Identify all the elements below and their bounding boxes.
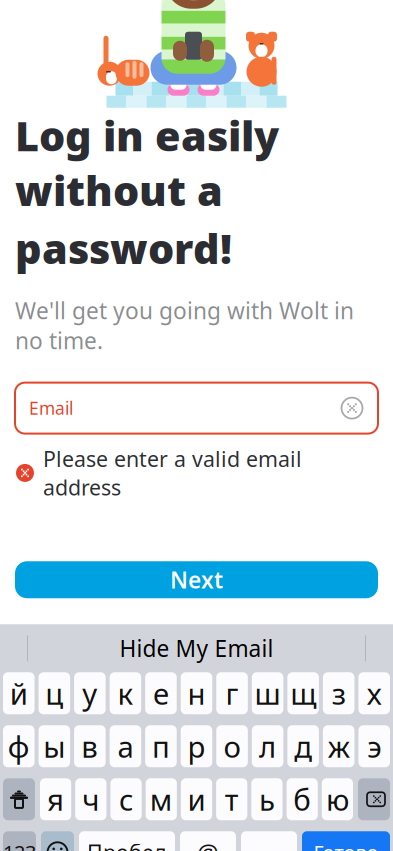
button[interactable]: Clear text [334, 390, 370, 426]
staticText: щ [290, 674, 316, 713]
staticText: @ [197, 836, 219, 851]
staticText: ц [45, 674, 63, 713]
button[interactable]: н [181, 672, 212, 714]
button[interactable]: ц [38, 672, 70, 714]
button[interactable]: с [110, 778, 142, 820]
button[interactable]: 123 [3, 831, 36, 851]
staticText: Пробел [87, 838, 167, 851]
staticText: й [10, 674, 28, 713]
button[interactable]: й [3, 672, 34, 714]
staticText: ш [255, 674, 281, 713]
button[interactable]: х [358, 672, 390, 714]
button[interactable]: щ [287, 672, 319, 714]
button[interactable]: ш [252, 672, 283, 714]
staticText: и [187, 780, 205, 819]
button[interactable]: Hide My Email [60, 625, 333, 671]
button[interactable]: ф [3, 725, 34, 767]
staticText: Готово [313, 839, 378, 851]
button[interactable]: п [145, 725, 177, 767]
button[interactable]: я [40, 778, 71, 820]
button[interactable]: д [287, 725, 319, 767]
staticText: з [332, 674, 346, 713]
button[interactable]: Delete [358, 778, 390, 820]
button[interactable]: @ [180, 831, 236, 851]
staticText: т [225, 780, 239, 819]
staticText: ь [259, 780, 275, 819]
staticText: н [187, 674, 205, 713]
staticText: м [150, 780, 173, 819]
staticText: с [119, 780, 133, 819]
button[interactable]: о [216, 725, 248, 767]
button[interactable]: ь [251, 778, 282, 820]
staticText: д [294, 727, 312, 766]
staticText: 123 [3, 839, 36, 851]
staticText: ы [43, 727, 65, 766]
button[interactable]: г [216, 672, 248, 714]
staticText: э [367, 727, 381, 766]
staticText: ж [328, 727, 350, 766]
staticText: Log in easily without a [15, 108, 279, 217]
button[interactable]: и [181, 778, 212, 820]
button[interactable]: э [358, 725, 390, 767]
button[interactable]: а [110, 725, 141, 767]
staticText: у [82, 674, 97, 713]
button[interactable]: м [146, 778, 177, 820]
staticText: х [367, 674, 382, 713]
staticText: We'll get you going with Wolt in no time… [15, 295, 354, 356]
button[interactable]: р [181, 725, 212, 767]
button[interactable]: ж [323, 725, 354, 767]
staticText: Hide My Email [119, 633, 273, 663]
staticText: б [293, 780, 311, 819]
button[interactable]: Пробел [79, 831, 175, 851]
button[interactable]: з [323, 672, 354, 714]
button[interactable]: Next [15, 561, 378, 598]
staticText: р [187, 727, 205, 766]
staticText: а [117, 727, 133, 766]
staticText: я [47, 780, 64, 819]
staticText: л [259, 727, 276, 766]
staticText: г [225, 674, 238, 713]
staticText: ф [8, 727, 30, 766]
button[interactable]: в [74, 725, 106, 767]
staticText: Please enter a valid email address [43, 445, 302, 501]
staticText: е [153, 674, 169, 713]
staticText: password! [15, 220, 232, 275]
button[interactable]: . [241, 831, 297, 851]
button[interactable]: ч [75, 778, 106, 820]
staticText: к [117, 674, 133, 713]
button[interactable]: Emoji [41, 831, 74, 851]
button[interactable]: т [216, 778, 247, 820]
staticText: Email [29, 397, 73, 420]
staticText: п [152, 727, 170, 766]
staticText: Next [170, 565, 223, 595]
button[interactable]: к [110, 672, 141, 714]
button[interactable]: Готово [302, 831, 390, 851]
button[interactable]: у [74, 672, 106, 714]
button[interactable]: е [145, 672, 177, 714]
button[interactable]: ы [38, 725, 70, 767]
button[interactable]: л [252, 725, 283, 767]
button[interactable]: ю [322, 778, 353, 820]
staticText: в [81, 727, 98, 766]
button[interactable]: б [287, 778, 318, 820]
button[interactable]: Shift [3, 778, 35, 820]
staticText: ч [82, 780, 99, 819]
staticText: о [223, 727, 240, 766]
staticText: ю [326, 780, 349, 819]
